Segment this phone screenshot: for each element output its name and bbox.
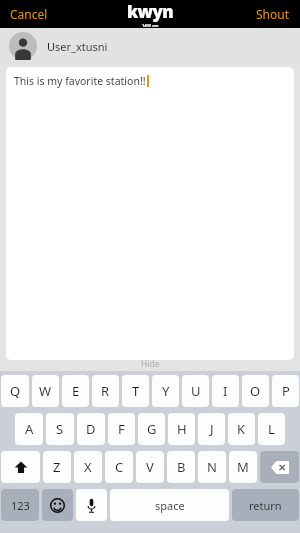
- staticText: M: [237, 458, 249, 476]
- staticText: F: [118, 420, 125, 438]
- button[interactable]: B: [167, 451, 195, 483]
- staticText: Y: [162, 382, 170, 400]
- button[interactable]: P: [272, 375, 299, 407]
- staticText: C: [115, 458, 124, 476]
- button[interactable]: Backspace: [260, 451, 299, 483]
- button[interactable]: Z: [43, 451, 71, 483]
- button[interactable]: S: [46, 413, 74, 445]
- staticText: W: [39, 382, 52, 400]
- button[interactable]: F: [108, 413, 135, 445]
- button[interactable]: V: [136, 451, 164, 483]
- button[interactable]: W: [32, 375, 59, 407]
- staticText: I: [223, 382, 228, 400]
- staticText: N: [207, 458, 217, 476]
- button[interactable]: Dictate: [76, 489, 107, 521]
- staticText: Shout: [256, 6, 290, 22]
- staticText: J: [210, 420, 214, 438]
- staticText: Hide: [141, 358, 160, 370]
- button[interactable]: T: [122, 375, 149, 407]
- button[interactable]: R: [92, 375, 119, 407]
- button[interactable]: J: [198, 413, 225, 445]
- staticText: B: [177, 458, 186, 476]
- staticText: return: [249, 498, 282, 513]
- button[interactable]: D: [77, 413, 105, 445]
- button[interactable]: A: [15, 413, 43, 445]
- button[interactable]: Q: [1, 375, 29, 407]
- staticText: K: [237, 420, 246, 438]
- button[interactable]: User_xtusni: [0, 28, 300, 64]
- button[interactable]: M: [229, 451, 257, 483]
- button[interactable]: This is my favorite station!!: [6, 67, 294, 360]
- staticText: U: [191, 382, 201, 400]
- staticText: Q: [10, 382, 21, 400]
- staticText: 1400 am: [142, 23, 159, 28]
- staticText: Cancel: [10, 6, 48, 22]
- button[interactable]: space: [110, 489, 229, 521]
- button[interactable]: G: [138, 413, 165, 445]
- staticText: L: [268, 420, 275, 438]
- staticText: P: [282, 382, 290, 400]
- button[interactable]: Emoji: [42, 489, 73, 521]
- button[interactable]: U: [182, 375, 209, 407]
- other: KWYN 1400 AM logo: [127, 0, 174, 28]
- staticText: kwyn: [127, 0, 174, 23]
- staticText: D: [86, 420, 96, 438]
- staticText: H: [177, 420, 187, 438]
- staticText: User_xtusni: [47, 39, 108, 54]
- staticText: This is my favorite station!!: [14, 74, 146, 88]
- staticText: X: [84, 458, 92, 476]
- button[interactable]: I: [212, 375, 239, 407]
- staticText: A: [25, 420, 34, 438]
- button[interactable]: E: [62, 375, 89, 407]
- button[interactable]: N: [198, 451, 226, 483]
- staticText: Z: [53, 458, 61, 476]
- button[interactable]: Cancel: [0, 0, 58, 28]
- staticText: O: [250, 382, 261, 400]
- button[interactable]: Shift: [1, 451, 40, 483]
- button[interactable]: C: [105, 451, 133, 483]
- button[interactable]: Y: [152, 375, 179, 407]
- staticText: S: [56, 420, 64, 438]
- button[interactable]: H: [168, 413, 195, 445]
- staticText: T: [132, 382, 140, 400]
- button[interactable]: L: [258, 413, 285, 445]
- staticText: space: [155, 498, 185, 513]
- staticText: 123: [11, 498, 30, 513]
- staticText: G: [147, 420, 157, 438]
- staticText: V: [146, 458, 154, 476]
- button[interactable]: K: [228, 413, 255, 445]
- button[interactable]: X: [74, 451, 102, 483]
- button[interactable]: 123: [1, 489, 39, 521]
- button[interactable]: O: [242, 375, 269, 407]
- button[interactable]: Shout: [246, 0, 300, 28]
- staticText: R: [101, 382, 110, 400]
- staticText: E: [72, 382, 80, 400]
- button[interactable]: return: [232, 489, 299, 521]
